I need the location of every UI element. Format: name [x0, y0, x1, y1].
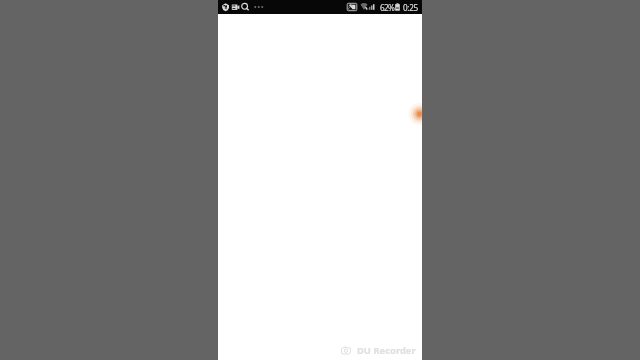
button[interactable]: Search: [241, 0, 251, 14]
staticText: 62%: [380, 2, 395, 13]
staticText: 0:25: [403, 2, 418, 13]
button[interactable]: VPN: [221, 0, 231, 14]
button[interactable]: Screen recorder: [406, 102, 422, 126]
button[interactable]: More options: [252, 0, 262, 14]
staticText: DU Recorder: [357, 344, 416, 357]
button[interactable]: Screen recording: [231, 0, 241, 14]
